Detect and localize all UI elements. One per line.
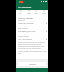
staticText: Email address [18, 27, 28, 29]
button[interactable]: More [40, 10, 47, 15]
staticText: You can change these preferences at any … [18, 50, 47, 54]
staticText: Send [27, 13, 31, 15]
staticText: Continue [29, 63, 36, 65]
button[interactable]: Email address [18, 27, 47, 33]
button[interactable]: Pay [17, 10, 24, 15]
staticText: Alexandra Morgan [18, 22, 34, 24]
button[interactable]: Send [25, 10, 32, 15]
staticText: We use the information you provide to ke… [18, 41, 47, 49]
staticText: Full name [18, 19, 25, 21]
button[interactable]: Cards [32, 10, 39, 15]
staticText: Account settings [18, 17, 34, 20]
button[interactable]: Mobile number [18, 35, 47, 41]
staticText: +44 7700 900123 [18, 38, 33, 40]
staticText: Cards [34, 13, 38, 15]
staticText: More [42, 13, 46, 15]
staticText: Pay [19, 13, 22, 15]
button[interactable]: Continue [18, 62, 46, 66]
staticText: a.morgan@mail.com [18, 30, 36, 32]
button[interactable]: Full name [18, 19, 47, 25]
staticText: Mobile number [18, 35, 29, 37]
staticText: My account [18, 5, 32, 8]
